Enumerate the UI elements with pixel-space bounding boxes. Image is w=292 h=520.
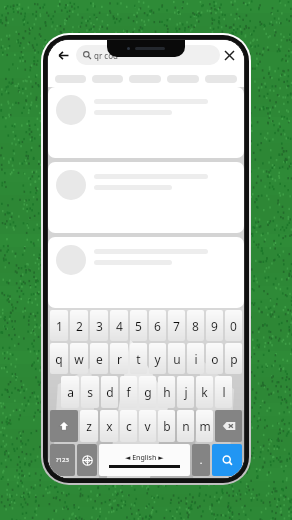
staticText: 6	[154, 318, 161, 334]
staticText: b	[163, 418, 171, 434]
staticText: z	[86, 418, 92, 434]
button[interactable]: i	[187, 343, 204, 374]
staticText: f	[126, 384, 131, 400]
button[interactable]: Search	[212, 444, 242, 476]
button[interactable]: b	[158, 410, 175, 442]
button[interactable]: 3	[90, 310, 108, 341]
staticText: w	[74, 351, 84, 367]
button[interactable]: 0	[225, 310, 242, 341]
button[interactable]: Key	[50, 444, 75, 476]
button[interactable]	[55, 75, 86, 83]
button[interactable]	[167, 75, 199, 83]
staticText: 1	[56, 318, 63, 334]
button[interactable]: 1	[50, 310, 68, 341]
button[interactable]: h	[158, 376, 175, 408]
staticText: i	[194, 351, 198, 367]
button[interactable]	[48, 237, 244, 308]
button[interactable]	[205, 75, 237, 83]
staticText: 0	[230, 318, 237, 334]
staticText: p	[230, 351, 238, 367]
button[interactable]: Key	[50, 410, 78, 442]
staticText: l	[222, 384, 226, 400]
button[interactable]: Key	[77, 444, 97, 476]
button[interactable]: u	[168, 343, 185, 374]
button[interactable]: r	[110, 343, 128, 374]
button[interactable]: 7	[168, 310, 185, 341]
staticText: h	[163, 384, 171, 400]
staticText: 4	[116, 318, 123, 334]
button[interactable]: k	[196, 376, 213, 408]
staticText: t	[136, 351, 141, 367]
button[interactable]: Key	[192, 444, 210, 476]
staticText: c	[126, 418, 132, 434]
button[interactable]: d	[101, 376, 118, 408]
button[interactable]: qr cod	[76, 45, 220, 65]
staticText: g	[144, 384, 152, 400]
staticText: s	[87, 384, 93, 400]
button[interactable]: f	[120, 376, 137, 408]
button[interactable]	[48, 87, 244, 158]
staticText: j	[184, 384, 188, 400]
staticText: 7	[173, 318, 180, 334]
staticText: o	[211, 351, 219, 367]
staticText: 5	[135, 318, 142, 334]
button[interactable]: e	[90, 343, 108, 374]
staticText: .	[200, 455, 203, 466]
staticText: 8	[192, 318, 199, 334]
staticText: n	[182, 418, 190, 434]
staticText: ?123	[56, 456, 69, 464]
button[interactable]	[48, 162, 244, 233]
staticText: 9	[211, 318, 218, 334]
button[interactable]: 2	[70, 310, 88, 341]
button[interactable]: Back	[54, 46, 72, 64]
button[interactable]: z	[80, 410, 98, 442]
button[interactable]: x	[100, 410, 118, 442]
button[interactable]: Clear	[220, 46, 238, 64]
button[interactable]: c	[120, 410, 137, 442]
staticText: qr cod	[94, 50, 118, 61]
button[interactable]: 6	[149, 310, 166, 341]
staticText: m	[199, 418, 211, 434]
staticText: v	[144, 418, 151, 434]
button[interactable]: g	[139, 376, 156, 408]
button[interactable]: 5	[130, 310, 147, 341]
button[interactable]: j	[177, 376, 194, 408]
button[interactable]: m	[196, 410, 213, 442]
staticText: u	[173, 351, 181, 367]
staticText: k	[201, 384, 208, 400]
button[interactable]: v	[139, 410, 156, 442]
staticText: r	[117, 351, 122, 367]
staticText: d	[106, 384, 114, 400]
button[interactable]: w	[70, 343, 88, 374]
button[interactable]: l	[215, 376, 232, 408]
button[interactable]: p	[225, 343, 242, 374]
staticText: 3	[96, 318, 103, 334]
button[interactable]: Key	[215, 410, 242, 442]
button[interactable]	[129, 75, 161, 83]
button[interactable]: y	[149, 343, 166, 374]
button[interactable]: 9	[206, 310, 223, 341]
button[interactable]: ◄ English ►	[99, 444, 190, 476]
staticText: y	[154, 351, 161, 367]
button[interactable]: 8	[187, 310, 204, 341]
button[interactable]: s	[81, 376, 99, 408]
staticText: e	[96, 351, 103, 367]
button[interactable]: a	[61, 376, 79, 408]
staticText: a	[67, 384, 74, 400]
staticText: 2	[76, 318, 83, 334]
button[interactable]: o	[206, 343, 223, 374]
button[interactable]: n	[177, 410, 194, 442]
button[interactable]: q	[50, 343, 68, 374]
staticText: x	[106, 418, 113, 434]
button[interactable]: 4	[110, 310, 128, 341]
button[interactable]	[92, 75, 123, 83]
button[interactable]: t	[130, 343, 147, 374]
staticText: q	[55, 351, 63, 367]
staticText: ◄ English ►	[125, 453, 164, 463]
